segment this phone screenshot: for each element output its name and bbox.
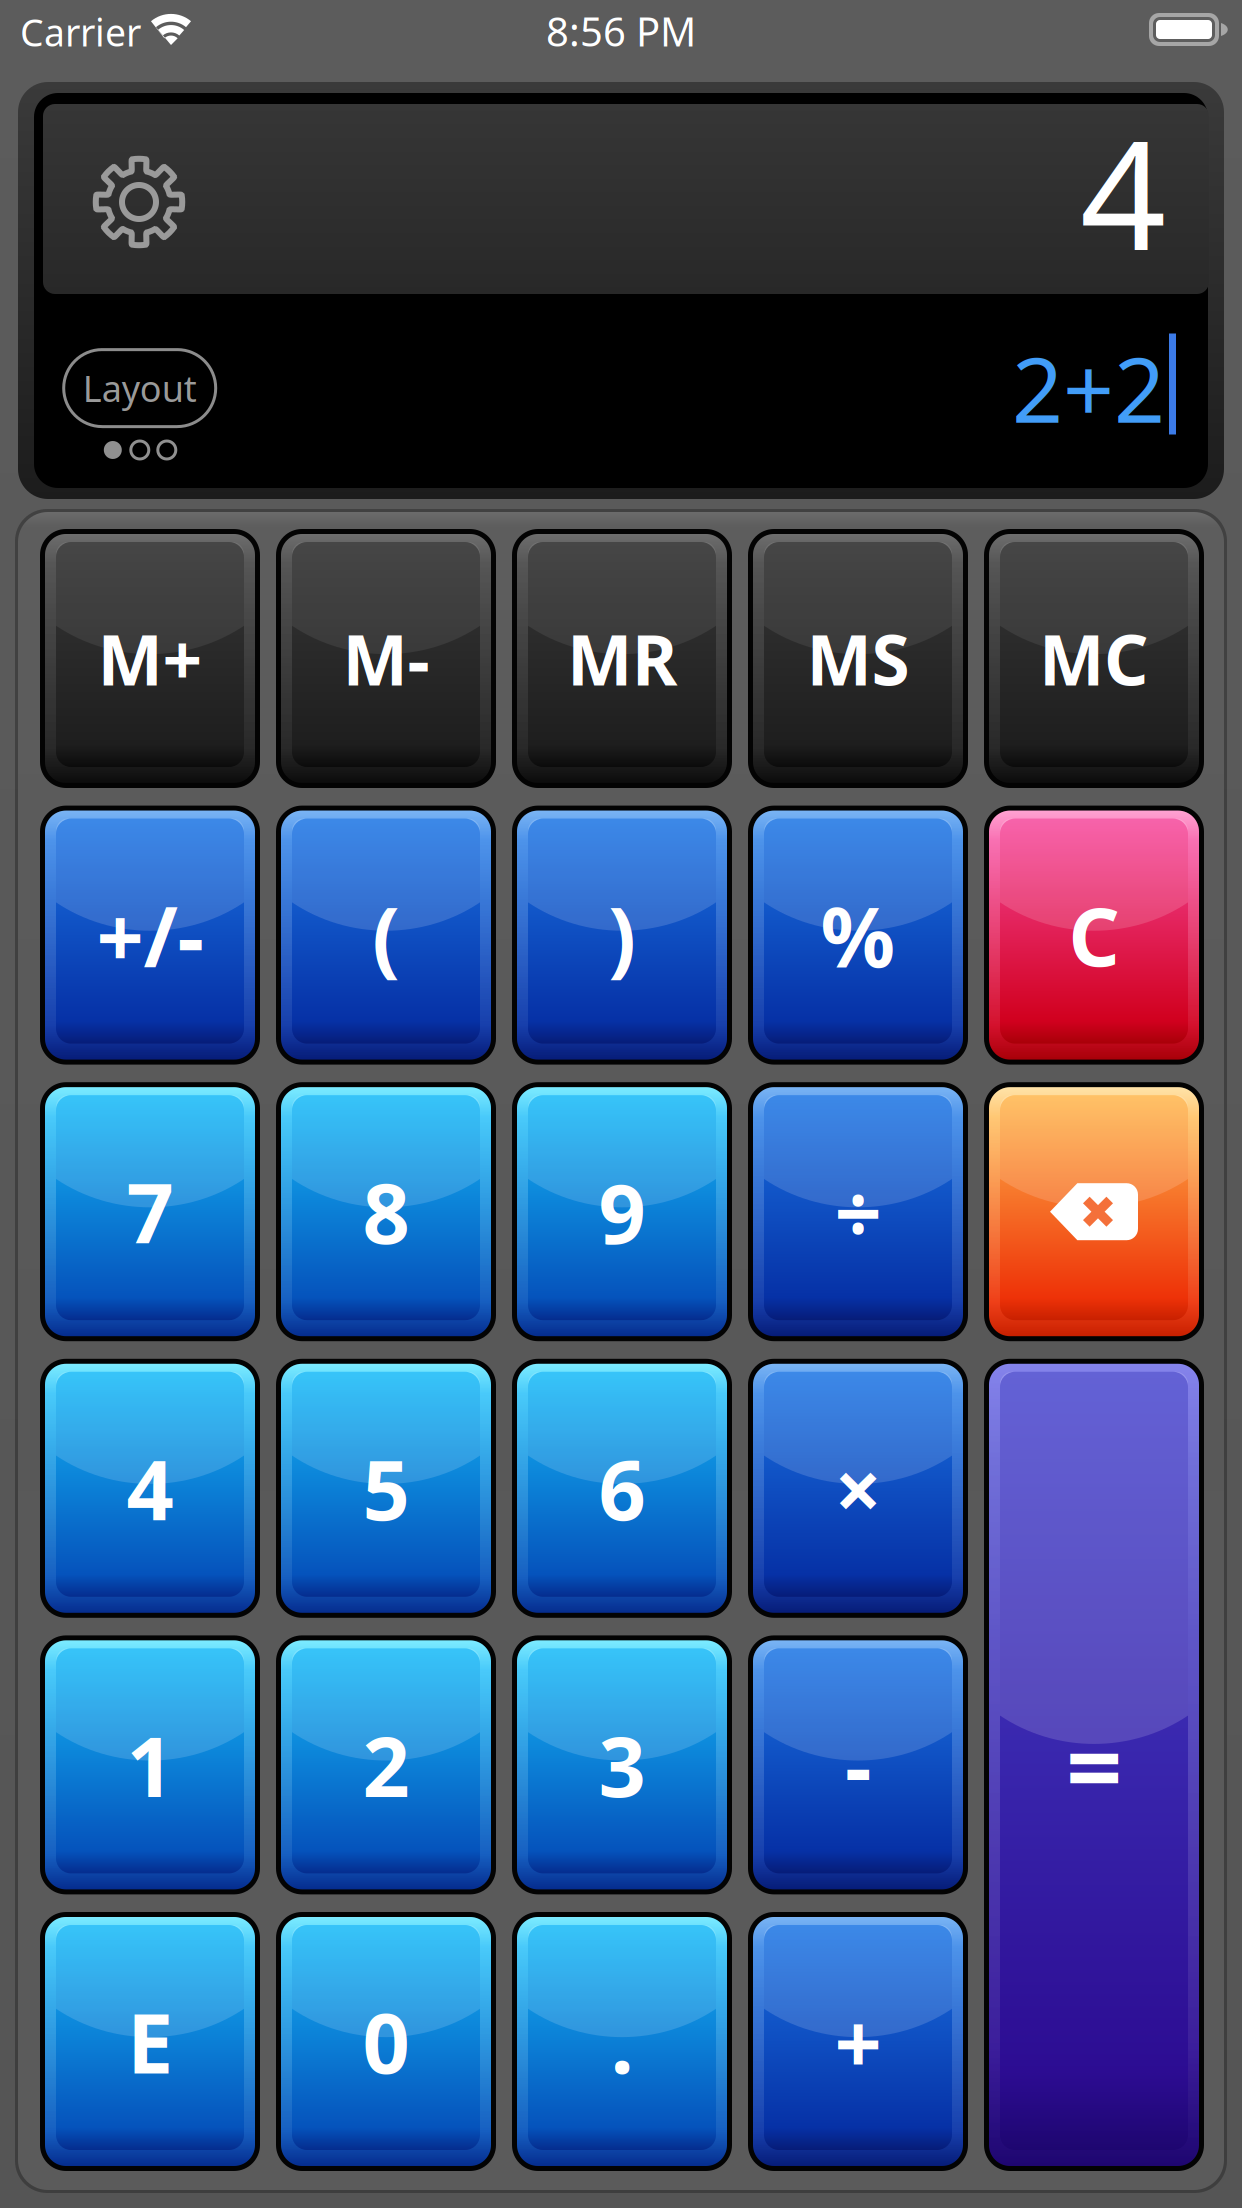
button[interactable]: ÷: [748, 1082, 968, 1341]
staticText: Carrier: [20, 7, 141, 57]
button[interactable]: MS: [748, 529, 968, 788]
staticText: E: [127, 1987, 173, 2096]
staticText: MS: [806, 612, 909, 705]
button[interactable]: MR: [512, 529, 732, 788]
staticText: (: [372, 880, 400, 990]
staticText: 3: [598, 1710, 645, 1820]
staticText: C: [1068, 882, 1119, 988]
button[interactable]: 0: [276, 1912, 496, 2171]
button[interactable]: -: [748, 1635, 968, 1894]
staticText: MR: [567, 612, 677, 705]
button[interactable]: 3: [512, 1635, 732, 1894]
staticText: 8: [362, 1157, 409, 1267]
button[interactable]: ): [512, 806, 732, 1065]
staticText: 5: [362, 1433, 409, 1543]
staticText: ÷: [834, 1157, 881, 1267]
staticText: .: [610, 1987, 633, 2096]
button[interactable]: 9: [512, 1082, 732, 1341]
button[interactable]: 7: [40, 1082, 260, 1341]
staticText: M-: [342, 612, 429, 705]
staticText: 6: [598, 1433, 645, 1543]
button[interactable]: M-: [276, 529, 496, 788]
staticText: 8:56 PM: [546, 4, 696, 57]
staticText: 4: [126, 1433, 173, 1543]
button[interactable]: E: [40, 1912, 260, 2171]
button[interactable]: %: [748, 806, 968, 1065]
staticText: 9: [598, 1157, 645, 1267]
staticText: ): [608, 880, 636, 990]
button[interactable]: 6: [512, 1359, 732, 1618]
button[interactable]: ×: [748, 1359, 968, 1618]
button[interactable]: MC: [984, 529, 1204, 788]
button[interactable]: +: [748, 1912, 968, 2171]
button[interactable]: Backspace: [984, 1082, 1204, 1341]
staticText: MC: [1039, 612, 1149, 705]
button[interactable]: 8: [276, 1082, 496, 1341]
staticText: 1: [126, 1710, 173, 1820]
staticText: =: [1066, 1699, 1122, 1830]
button[interactable]: Layout: [55, 345, 225, 432]
staticText: 4: [1080, 91, 1166, 291]
staticText: %: [820, 880, 895, 990]
staticText: -: [845, 1710, 871, 1820]
staticText: M+: [97, 612, 202, 705]
staticText: 0: [362, 1987, 409, 2096]
staticText: 2: [362, 1710, 409, 1820]
button[interactable]: M+: [40, 529, 260, 788]
button[interactable]: .: [512, 1912, 732, 2171]
button[interactable]: (: [276, 806, 496, 1065]
staticText: ×: [834, 1433, 881, 1543]
button[interactable]: C: [984, 806, 1204, 1065]
button[interactable]: 1: [40, 1635, 260, 1894]
staticText: +/-: [96, 880, 203, 990]
button[interactable]: +/-: [40, 806, 260, 1065]
button[interactable]: Settings: [87, 150, 191, 254]
button[interactable]: =: [984, 1359, 1204, 2171]
staticText: Layout: [83, 364, 197, 412]
button[interactable]: 5: [276, 1359, 496, 1618]
button[interactable]: 4: [40, 1359, 260, 1618]
button[interactable]: 2: [276, 1635, 496, 1894]
staticText: 7: [126, 1157, 173, 1267]
staticText: 2+2: [1012, 329, 1165, 447]
staticText: +: [834, 1987, 881, 2096]
